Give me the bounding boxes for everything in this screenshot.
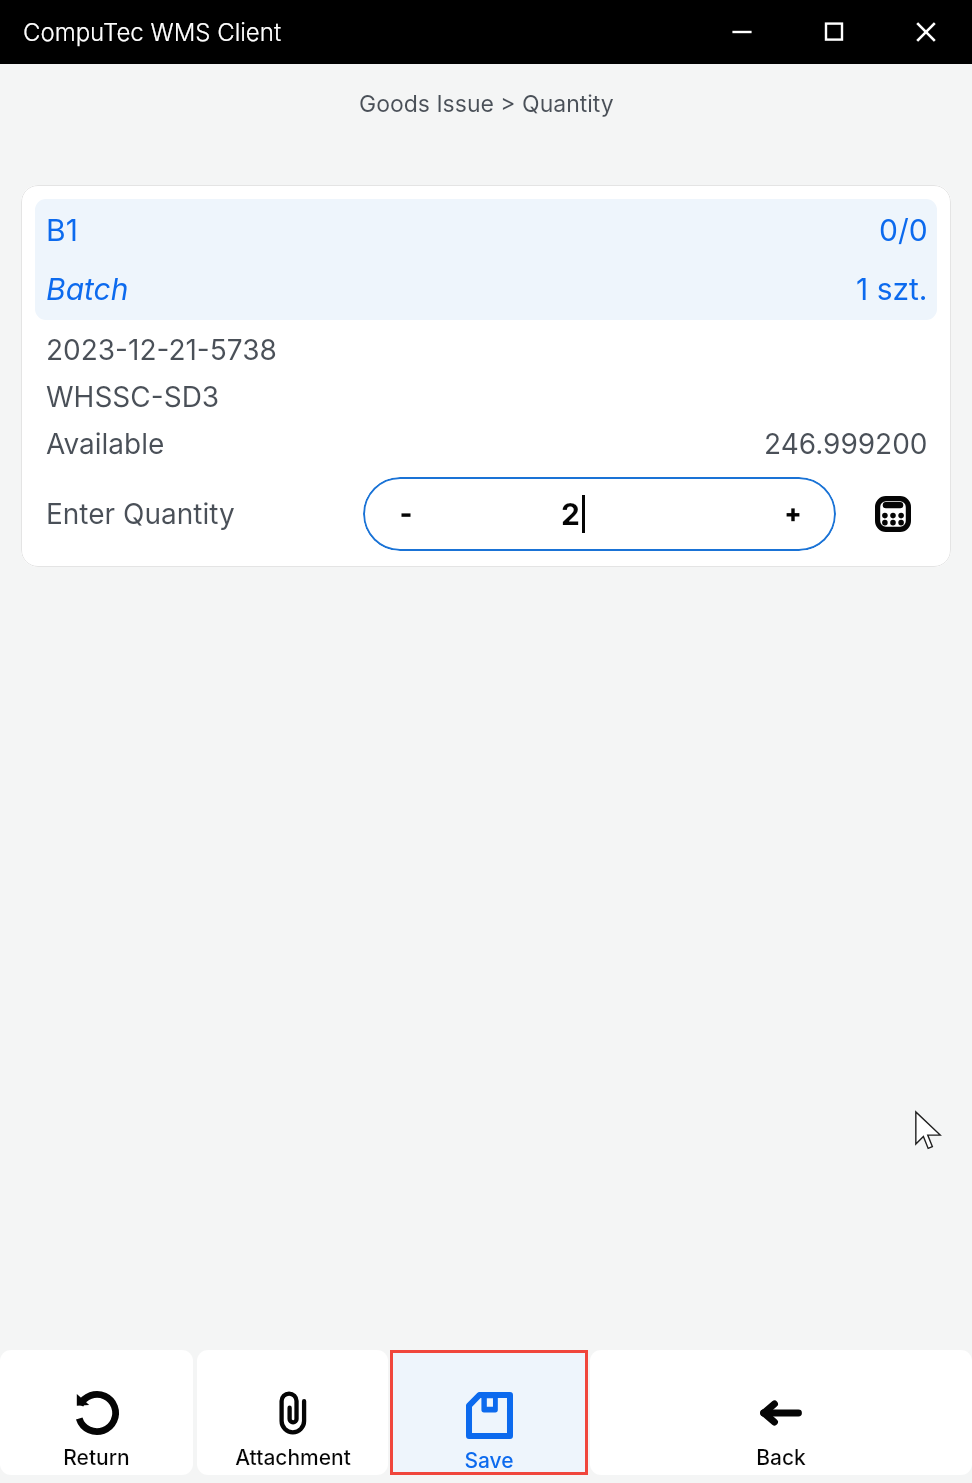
button[interactable]: Close [880, 0, 972, 64]
staticText: CompuTec WMS Client [23, 18, 282, 47]
staticText: Attachment [235, 1445, 351, 1470]
staticText: 2 [561, 496, 580, 532]
button[interactable]: Calculator [865, 486, 921, 542]
staticText: Return [63, 1445, 130, 1470]
button[interactable]: Maximize [788, 0, 880, 64]
staticText: 0/0 [879, 212, 928, 248]
staticText: Enter Quantity [46, 497, 235, 531]
staticText: 246.999200 [764, 427, 928, 461]
button[interactable]: Increase quantity [750, 477, 836, 551]
staticText: Batch [46, 271, 129, 307]
button[interactable]: Attachment [197, 1350, 388, 1475]
staticText: B1 [46, 212, 78, 248]
staticText: Save [464, 1448, 514, 1473]
staticText: Available [46, 427, 165, 461]
staticText: Back [756, 1445, 806, 1470]
button[interactable]: Minimize [696, 0, 788, 64]
staticText: 2023-12-21-5738 [46, 333, 277, 367]
button[interactable]: Decrease quantity [363, 477, 449, 551]
button[interactable]: Return [0, 1350, 193, 1475]
button[interactable]: Back [590, 1350, 972, 1475]
staticText: WHSSC-SD3 [46, 380, 220, 414]
staticText: Goods Issue > Quantity [359, 90, 614, 118]
button[interactable]: Save [390, 1350, 588, 1475]
staticText: 1 szt. [856, 271, 928, 307]
